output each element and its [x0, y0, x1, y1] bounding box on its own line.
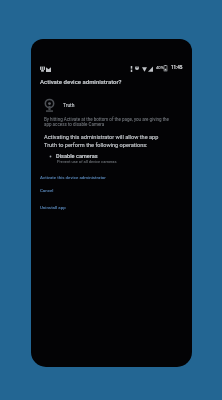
staticText: Disable cameras [56, 153, 98, 160]
staticText: Activating this administrator will allow… [44, 134, 168, 149]
staticText: Activate this device administrator [40, 175, 106, 180]
staticText: Truth [63, 102, 75, 108]
button[interactable]: Uninstall app [36, 201, 188, 213]
staticText: Activate device administrator? [40, 78, 122, 85]
staticText: 11:45 [171, 65, 183, 70]
button[interactable]: Activate this device administrator [36, 171, 188, 183]
staticText: Uninstall app [40, 205, 66, 210]
staticText: Cancel [40, 188, 54, 193]
button[interactable]: Cancel [36, 184, 188, 196]
staticText: By hitting Activate at the bottom of the… [44, 117, 171, 127]
staticText: 40% [156, 65, 164, 70]
staticText: Prevent use of all device cameras [57, 159, 117, 164]
